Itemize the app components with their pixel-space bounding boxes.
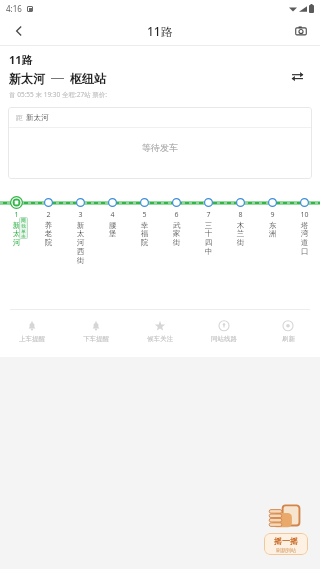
button[interactable]: 1 — [0, 195, 32, 291]
staticText: 养老院 — [44, 221, 53, 248]
staticText: 木兰街 — [236, 221, 245, 248]
staticText: 2 — [46, 210, 51, 220]
staticText: 幸福院 — [140, 221, 149, 248]
staticText: 首 05:55 末 19:30 全程:27站 票价: — [9, 90, 108, 99]
staticText: 11路 — [147, 23, 173, 39]
staticText: 9 — [270, 210, 275, 220]
staticText: 东洲 — [268, 221, 277, 239]
staticText: 腰堡 — [108, 221, 117, 239]
staticText: 4:16 — [6, 3, 22, 14]
staticText: 同站线路 — [211, 335, 237, 343]
button[interactable]: 6 — [160, 195, 192, 291]
staticText: 新太河 — [9, 71, 45, 86]
button[interactable]: Scan — [286, 16, 316, 46]
button[interactable]: 8 — [224, 195, 256, 291]
staticText: 6 — [174, 210, 179, 220]
staticText: 11路 — [9, 52, 33, 67]
staticText: 新太河 — [12, 221, 21, 248]
button[interactable]: 候车关注 — [128, 318, 192, 345]
button[interactable]: 同站线路 — [192, 318, 256, 345]
staticText: 刷新到站 — [276, 547, 296, 553]
staticText: 等待发车 — [142, 142, 178, 153]
button[interactable]: 2 — [32, 195, 64, 291]
staticText: 距 — [16, 113, 23, 122]
staticText: 武家街 — [172, 221, 181, 248]
button[interactable]: 刷新 — [256, 318, 320, 345]
staticText: 8 — [238, 210, 243, 220]
staticText: 1 — [14, 210, 19, 220]
staticText: 4 — [110, 210, 115, 220]
staticText: 三十四中 — [204, 221, 213, 257]
button[interactable]: Reverse direction — [284, 63, 310, 89]
staticText: 候车关注 — [147, 335, 173, 343]
button[interactable]: 距 — [8, 107, 312, 179]
staticText: 新太河 — [26, 113, 49, 122]
button[interactable]: 5 — [128, 195, 160, 291]
staticText: 刷新 — [282, 335, 295, 343]
button[interactable]: 3 — [64, 195, 96, 291]
button[interactable]: 下车提醒 — [64, 318, 128, 345]
staticText: 7 — [206, 210, 211, 220]
button[interactable]: 摇一摇 刷新到站 — [262, 497, 310, 555]
button[interactable]: 4 — [96, 195, 128, 291]
staticText: 5 — [142, 210, 147, 220]
button[interactable]: 上车提醒 — [0, 318, 64, 345]
staticText: 上车提醒 — [19, 335, 45, 343]
staticText: 新太河西街 — [76, 221, 85, 266]
button[interactable]: 7 — [192, 195, 224, 291]
staticText: 网我单击 — [21, 218, 26, 239]
staticText: 摇一摇 — [274, 536, 298, 546]
staticText: 下车提醒 — [83, 335, 109, 343]
staticText: 塔湾道口 — [300, 221, 309, 257]
staticText: 枢纽站 — [70, 71, 106, 86]
staticText: 3 — [78, 210, 83, 220]
button[interactable]: Back — [4, 16, 34, 46]
button[interactable]: 10 — [288, 195, 320, 291]
staticText: 10 — [300, 210, 309, 220]
button[interactable]: 9 — [256, 195, 288, 291]
